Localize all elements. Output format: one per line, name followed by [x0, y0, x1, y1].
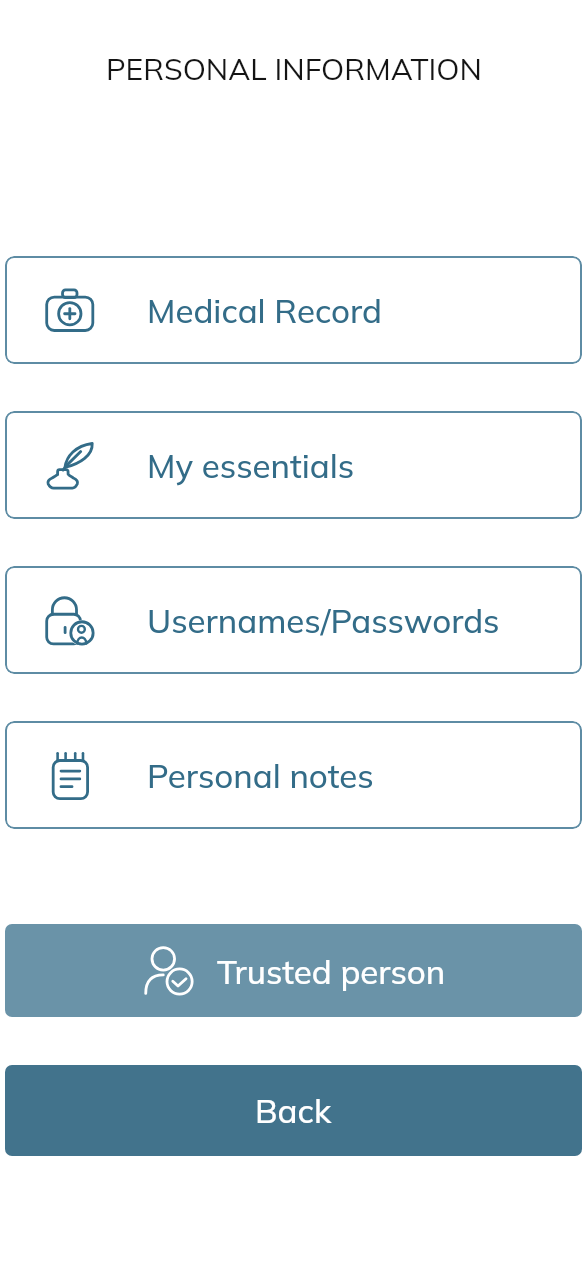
button[interactable]: Medical record — [5, 256, 582, 364]
button[interactable]: Personal notes — [5, 721, 582, 829]
button[interactable]: Back — [5, 1065, 582, 1156]
staticText: Back — [255, 1090, 332, 1131]
staticText: Usernames/Passwords — [147, 600, 500, 641]
staticText: Medical Record — [147, 290, 382, 331]
staticText: My essentials — [147, 445, 355, 486]
other: My essentials — [44, 438, 98, 492]
button[interactable]: My essentials — [5, 411, 582, 519]
staticText: Trusted person — [217, 951, 446, 992]
staticText: Personal notes — [147, 755, 374, 796]
other: Usernames and passwords — [44, 593, 98, 647]
other: Medical record — [44, 283, 98, 337]
staticText: PERSONAL INFORMATION — [0, 50, 588, 88]
other: Personal notes — [44, 748, 98, 802]
button[interactable]: Trusted person — [5, 924, 582, 1017]
button[interactable]: Usernames and passwords — [5, 566, 582, 674]
other: Trusted person — [142, 944, 196, 998]
